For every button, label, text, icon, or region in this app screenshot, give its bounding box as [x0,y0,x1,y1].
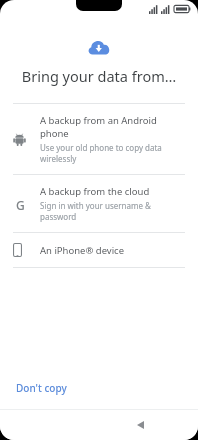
staticText: Bring your data from… [0,66,198,86]
button[interactable]: Android [0,104,198,174]
other: iPhone [13,243,22,257]
other: Android [13,133,26,146]
other: Google [13,197,27,211]
staticText: A backup from an Android phone [40,114,185,140]
staticText: Sign in with your username & password [40,200,185,222]
button[interactable]: Google [0,175,198,232]
button[interactable]: Back [127,412,153,438]
staticText: Don't copy [16,381,67,395]
button[interactable]: iPhone [0,233,198,267]
button[interactable]: Don't copy [9,376,74,400]
staticText: A backup from the cloud [40,185,150,198]
staticText: An iPhone® device [40,244,125,257]
staticText: Use your old phone to copy data wireless… [40,142,185,164]
staticText: G [16,197,25,211]
